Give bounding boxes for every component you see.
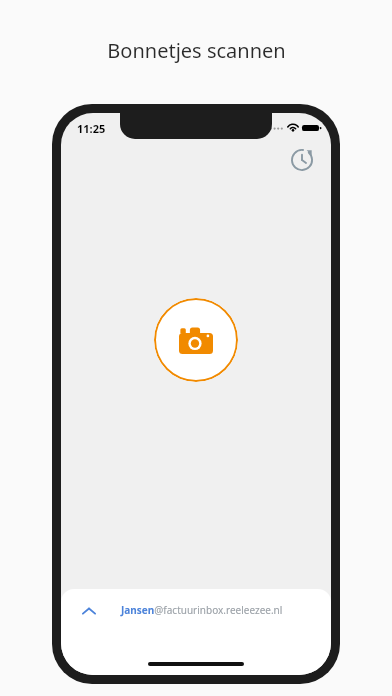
button[interactable]: History: [287, 145, 317, 175]
staticText: 11:25: [77, 121, 106, 136]
staticText: Bonnetjes scannen: [107, 37, 286, 64]
button[interactable]: Scan receipt: [154, 298, 238, 382]
button[interactable]: Jansen@factuurinbox.reeleezee.nl: [61, 589, 331, 653]
staticText: Jansen@factuurinbox.reeleezee.nl: [121, 603, 283, 617]
